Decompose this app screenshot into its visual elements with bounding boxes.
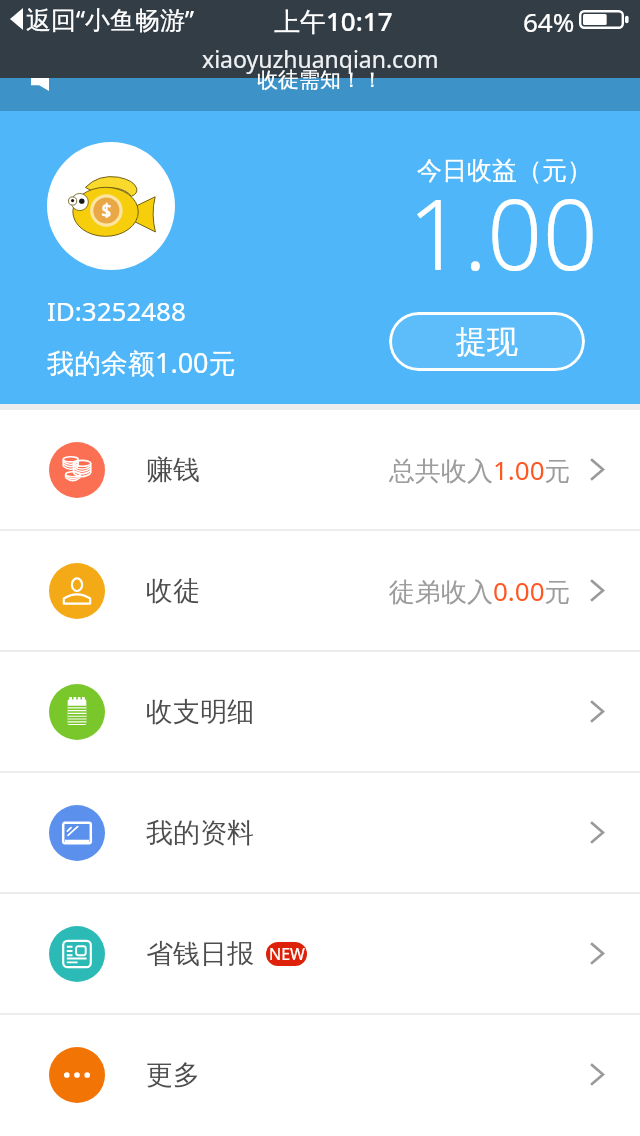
staticText: 收徒 [146, 574, 200, 608]
staticText: 今日收益（元） [417, 155, 592, 186]
staticText: xiaoyuzhuanqian.com [202, 43, 439, 74]
staticText: 返回“小鱼畅游” [26, 2, 194, 36]
button[interactable]: 更多 [0, 1015, 640, 1134]
button[interactable]: 收徒 [0, 531, 640, 650]
button[interactable]: 收支明细 [0, 652, 640, 771]
staticText: 1.00 [408, 166, 598, 298]
button[interactable]: 赚钱 [0, 410, 640, 529]
staticText: 我的余额1.00元 [47, 344, 236, 381]
staticText: 64% [523, 4, 575, 39]
staticText: 徒弟收入0.00元 [389, 573, 571, 609]
staticText: 总共收入1.00元 [389, 452, 571, 488]
staticText: NEW [269, 943, 305, 965]
other: Announcement [31, 78, 49, 91]
staticText: 提现 [456, 322, 518, 361]
staticText: 赚钱 [146, 453, 200, 487]
button[interactable]: 省钱日报 [0, 894, 640, 1013]
staticText: 更多 [146, 1058, 200, 1092]
staticText: 收徒需知！！ [257, 67, 383, 93]
button[interactable]: 我的资料 [0, 773, 640, 892]
staticText: 我的资料 [146, 816, 254, 850]
staticText: 上午10:17 [274, 3, 393, 39]
staticText: 收支明细 [146, 695, 254, 729]
other: Battery 64 percent [579, 10, 630, 29]
button[interactable]: 返回“小鱼畅游” [10, 0, 194, 38]
staticText: ID:3252488 [47, 293, 186, 328]
button[interactable]: Avatar [47, 142, 175, 270]
staticText: 省钱日报 [146, 937, 254, 971]
button[interactable]: 提现 [389, 312, 585, 371]
